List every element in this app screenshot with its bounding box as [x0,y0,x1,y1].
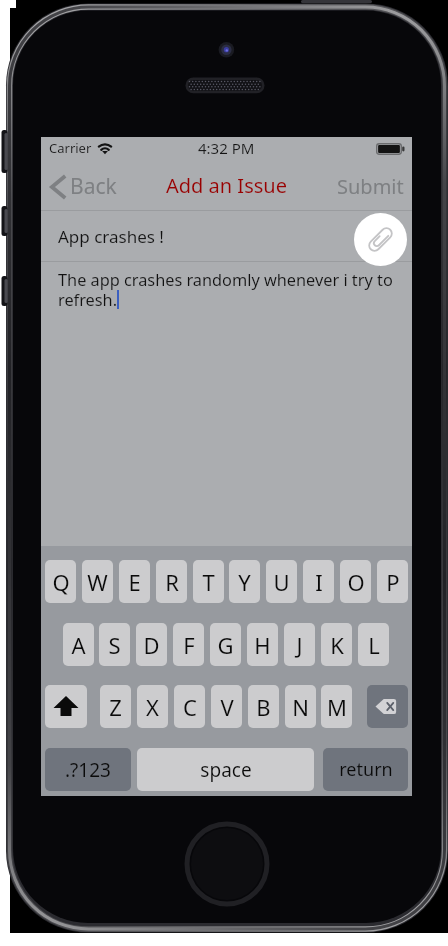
button[interactable]: Submit [329,164,412,209]
button[interactable]: R [156,560,187,603]
staticText: B [256,692,271,722]
staticText: .?123 [65,757,111,783]
staticText: N [292,692,309,722]
button[interactable]: L [358,623,389,666]
button[interactable]: K [321,623,352,666]
staticText: F [183,630,195,660]
staticText: G [217,630,234,660]
staticText: The app crashes randomly whenever i try … [58,269,393,311]
staticText: Add an Issue [166,172,287,199]
button[interactable]: C [174,685,205,728]
button[interactable]: E [119,560,150,603]
staticText: Z [109,692,122,722]
button[interactable]: .?123 [45,748,131,791]
staticText: Submit [337,173,404,200]
button[interactable]: Attach file [354,213,407,266]
button[interactable]: B [248,685,279,728]
staticText: Y [238,567,251,597]
button[interactable]: P [377,560,408,603]
button[interactable]: H [247,623,278,666]
button[interactable]: The app crashes randomly whenever i try … [41,262,412,546]
button[interactable]: return [323,748,408,791]
button[interactable]: space [137,748,314,791]
staticText: T [202,567,215,597]
staticText: L [368,630,380,660]
staticText: P [386,567,400,597]
staticText: X [146,692,159,722]
button[interactable]: T [193,560,224,603]
staticText: space [200,757,252,783]
button[interactable]: V [211,685,242,728]
staticText: R [165,567,179,597]
staticText: D [143,630,160,660]
staticText: I [315,567,323,597]
button[interactable]: Backspace [367,685,408,728]
staticText: V [220,692,234,722]
staticText: Carrier [49,139,92,157]
staticText: M [327,692,347,722]
staticText: H [254,630,271,660]
staticText: J [296,630,303,660]
staticText: K [330,630,344,660]
button[interactable]: N [285,685,316,728]
staticText: return [339,757,393,782]
button[interactable]: D [136,623,167,666]
button[interactable]: Back [41,164,127,209]
button[interactable]: I [303,560,334,603]
button[interactable]: O [340,560,371,603]
staticText: A [71,630,86,660]
button[interactable]: G [210,623,241,666]
button[interactable]: M [321,685,352,728]
button[interactable]: X [137,685,168,728]
staticText: 4:32 PM [198,138,255,158]
button[interactable]: Y [229,560,260,603]
staticText: Back [70,172,117,201]
button[interactable]: J [284,623,315,666]
staticText: E [128,567,141,597]
staticText: Q [52,567,70,597]
button[interactable]: Shift [45,685,87,728]
staticText: O [347,567,365,597]
button[interactable]: App crashes ! [41,211,412,262]
button[interactable]: A [63,623,94,666]
staticText: C [183,692,197,722]
staticText: W [87,567,108,597]
staticText: U [273,567,290,597]
button[interactable]: W [82,560,113,603]
button[interactable]: Z [100,685,131,728]
button[interactable]: S [99,623,130,666]
button[interactable]: F [173,623,204,666]
button[interactable]: U [266,560,297,603]
staticText: App crashes ! [58,225,164,248]
staticText: S [108,630,121,660]
button[interactable]: Q [45,560,76,603]
